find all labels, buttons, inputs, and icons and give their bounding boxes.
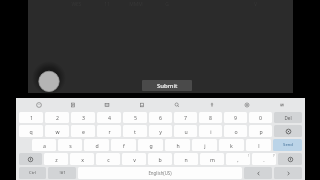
staticText: , — [237, 156, 239, 163]
button[interactable]: !#1 — [48, 167, 76, 179]
button[interactable]: Previous — [244, 167, 272, 179]
staticText: 0 — [259, 114, 262, 121]
staticText: !#1 — [59, 170, 66, 176]
button[interactable]: 5 — [123, 112, 147, 123]
button[interactable]: Submit — [142, 80, 192, 91]
staticText: n — [184, 156, 188, 163]
staticText: v — [133, 156, 136, 163]
button[interactable]: 8 — [199, 112, 222, 123]
button[interactable]: o — [224, 125, 247, 137]
button[interactable]: c — [96, 153, 120, 165]
button[interactable]: i — [199, 125, 222, 137]
button[interactable]: 4 — [97, 112, 121, 123]
staticText: 6 — [159, 114, 162, 121]
button[interactable]: r — [97, 125, 121, 137]
button[interactable]: 6 — [149, 112, 172, 123]
staticText: Submit — [157, 82, 178, 90]
staticText: g — [149, 142, 153, 149]
staticText: y — [159, 128, 162, 135]
staticText: f — [123, 142, 125, 149]
button[interactable]: Layout — [90, 98, 124, 111]
button[interactable]: t — [123, 125, 147, 137]
staticText: w — [55, 128, 60, 135]
staticText: 5 — [134, 114, 137, 121]
staticText: 2 — [56, 114, 59, 121]
button[interactable]: l — [246, 139, 271, 151]
button[interactable]: n — [174, 153, 198, 165]
button[interactable]: u — [174, 125, 197, 137]
staticText: q — [29, 128, 33, 135]
staticText: 3 — [82, 114, 85, 121]
button[interactable]: Shift — [19, 153, 42, 165]
button[interactable]: p — [249, 125, 272, 137]
button[interactable]: 2 — [45, 112, 69, 123]
button[interactable]: z — [44, 153, 68, 165]
button[interactable]: More — [264, 98, 299, 111]
staticText: d — [95, 142, 99, 149]
button[interactable]: Ctrl — [19, 167, 46, 179]
staticText: l — [258, 142, 260, 149]
staticText: ? — [273, 153, 275, 158]
staticText: 1 — [30, 114, 33, 121]
staticText: p — [259, 128, 263, 135]
staticText: Del — [284, 115, 292, 121]
button[interactable]: Voice — [194, 98, 229, 111]
button[interactable]: Settings — [229, 98, 264, 111]
staticText: r — [108, 128, 111, 135]
button[interactable]: w — [45, 125, 69, 137]
button[interactable]: Backspace — [274, 125, 302, 137]
staticText: . — [263, 156, 265, 163]
button[interactable]: 1 — [19, 112, 43, 123]
staticText: x — [81, 156, 84, 163]
button[interactable]: 7 — [174, 112, 197, 123]
staticText: a — [43, 142, 46, 149]
staticText: s — [69, 142, 72, 149]
button[interactable]: English(US) — [78, 167, 242, 179]
staticText: t — [134, 128, 136, 135]
button[interactable]: m — [200, 153, 224, 165]
button[interactable]: v — [122, 153, 146, 165]
staticText: h — [176, 142, 180, 149]
button[interactable]: e — [71, 125, 95, 137]
button[interactable]: s — [58, 139, 82, 151]
button[interactable]: 0 — [249, 112, 272, 123]
staticText: b — [158, 156, 162, 163]
button[interactable]: Clipboard — [56, 98, 90, 111]
staticText: 7 — [184, 114, 187, 121]
button[interactable]: 3 — [71, 112, 95, 123]
button[interactable]: k — [219, 139, 244, 151]
button[interactable]: Translate — [124, 98, 159, 111]
button[interactable]: x — [70, 153, 94, 165]
button[interactable]: Search — [159, 98, 194, 111]
button[interactable]: Emoji — [22, 98, 56, 111]
button[interactable]: Joystick control — [32, 61, 66, 95]
button[interactable]: g — [138, 139, 163, 151]
button[interactable]: Send — [273, 139, 302, 151]
staticText: English(US) — [148, 170, 172, 176]
staticText: z — [55, 156, 58, 163]
button[interactable]: Next — [274, 167, 302, 179]
button[interactable]: y — [149, 125, 172, 137]
button[interactable]: , — [226, 153, 250, 165]
staticText: j — [204, 142, 206, 149]
button[interactable]: 9 — [224, 112, 247, 123]
staticText: u — [184, 128, 188, 135]
button[interactable]: j — [192, 139, 217, 151]
button[interactable]: a — [32, 139, 56, 151]
button[interactable]: q — [19, 125, 43, 137]
staticText: c — [107, 156, 110, 163]
button[interactable]: d — [84, 139, 109, 151]
button[interactable]: b — [148, 153, 172, 165]
button[interactable]: h — [165, 139, 190, 151]
button[interactable]: Shift — [278, 153, 302, 165]
staticText: e — [82, 128, 85, 135]
staticText: k — [230, 142, 233, 149]
button[interactable]: f — [111, 139, 136, 151]
button[interactable]: Del — [274, 112, 302, 123]
button[interactable]: . — [252, 153, 276, 165]
